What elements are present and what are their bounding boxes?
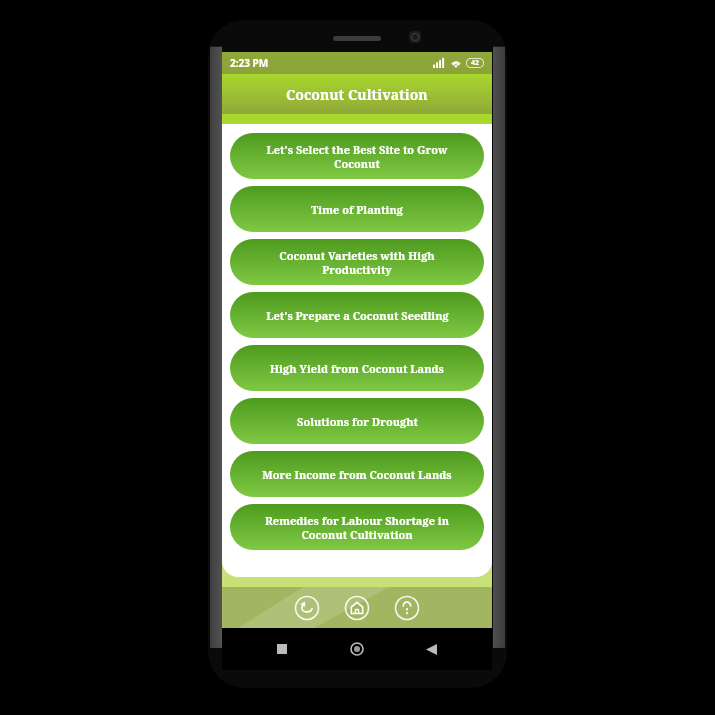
button[interactable]: Remedies for Labour Shortage in Coconut …	[230, 504, 484, 550]
staticText: Remedies for Labour Shortage in Coconut …	[244, 513, 470, 542]
button[interactable]: Time of Planting	[230, 186, 484, 232]
staticText: Let's Prepare a Coconut Seedling	[266, 308, 449, 323]
staticText: Coconut Cultivation	[286, 85, 428, 104]
button[interactable]: Coconut Varieties with High Productivity	[230, 239, 484, 285]
staticText: 2:23 PM	[230, 56, 269, 70]
button[interactable]: Let's Prepare a Coconut Seedling	[230, 292, 484, 338]
staticText: Solutions for Drought	[297, 414, 418, 429]
button[interactable]: Back	[294, 595, 320, 621]
staticText: Let's Select the Best Site to Grow Cocon…	[244, 142, 470, 171]
staticText: More Income from Coconut Lands	[262, 467, 452, 482]
staticText: Coconut Varieties with High Productivity	[244, 248, 470, 277]
button[interactable]: Help	[394, 595, 420, 621]
button[interactable]: Let's Select the Best Site to Grow Cocon…	[230, 133, 484, 179]
button[interactable]: More Income from Coconut Lands	[230, 451, 484, 497]
staticText: High Yield from Coconut Lands	[270, 361, 444, 376]
staticText: Time of Planting	[311, 202, 403, 217]
button[interactable]: Solutions for Drought	[230, 398, 484, 444]
button[interactable]: Home	[344, 595, 370, 621]
staticText: 42	[471, 58, 480, 68]
button[interactable]: High Yield from Coconut Lands	[230, 345, 484, 391]
